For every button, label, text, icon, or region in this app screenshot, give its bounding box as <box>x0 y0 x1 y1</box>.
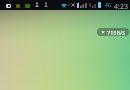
button[interactable]: Wi-Fi <box>97 28 129 36</box>
staticText: 4G <box>105 2 112 9</box>
staticText: 715B/S <box>107 29 126 36</box>
staticText: 4:23 <box>114 2 128 12</box>
other: Wi-Fi <box>101 30 105 34</box>
